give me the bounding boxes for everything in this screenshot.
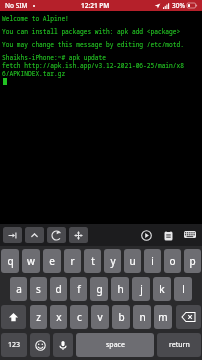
button[interactable]: i: [144, 249, 161, 273]
staticText: p: [189, 254, 196, 268]
button[interactable]: n: [133, 305, 151, 329]
button[interactable]: p: [184, 249, 201, 273]
staticText: space: [106, 340, 125, 350]
staticText: You may change this message by editing /…: [2, 40, 184, 48]
button[interactable]: Control: [25, 227, 44, 243]
staticText: 6/APKINDEX.tar.gz: [2, 69, 66, 77]
button[interactable]: Shift: [1, 305, 26, 329]
button[interactable]: x: [50, 305, 67, 329]
button[interactable]: r: [64, 249, 81, 273]
button[interactable]: 123: [1, 333, 27, 357]
button[interactable]: l: [174, 277, 192, 301]
staticText: 123: [8, 340, 21, 350]
staticText: s: [36, 282, 41, 296]
button[interactable]: Clipboard: [161, 228, 175, 242]
staticText: j: [140, 282, 143, 296]
staticText: No SIM: [5, 1, 28, 10]
button[interactable]: c: [70, 305, 88, 329]
staticText: c: [77, 310, 82, 324]
staticText: l: [182, 282, 185, 296]
staticText: Shaikhs-iPhone:~# apk update: [2, 53, 106, 61]
staticText: m: [158, 310, 168, 324]
button[interactable]: Backspace: [176, 305, 201, 329]
staticText: y: [110, 254, 116, 268]
staticText: q: [7, 254, 14, 268]
staticText: g: [96, 282, 103, 296]
button[interactable]: a: [10, 277, 27, 301]
button[interactable]: b: [112, 305, 130, 329]
button[interactable]: q: [1, 249, 19, 273]
button[interactable]: Tab: [3, 227, 22, 243]
staticText: return: [169, 340, 190, 350]
button[interactable]: e: [43, 249, 61, 273]
staticText: f: [77, 282, 81, 296]
staticText: i: [151, 254, 154, 268]
button[interactable]: Paste: [139, 228, 153, 242]
staticText: fetch http://apk.ish.app/v3.12-2021-06-2…: [2, 61, 184, 69]
button[interactable]: v: [91, 305, 109, 329]
button[interactable]: z: [30, 305, 47, 329]
staticText: d: [55, 282, 62, 296]
button[interactable]: Escape: [47, 227, 66, 243]
button[interactable]: w: [22, 249, 40, 273]
button[interactable]: u: [124, 249, 141, 273]
staticText: a: [16, 282, 22, 296]
staticText: v: [97, 310, 103, 324]
button[interactable]: Dictation: [53, 333, 73, 357]
staticText: n: [139, 310, 146, 324]
button[interactable]: o: [164, 249, 181, 273]
staticText: You can install packages with: apk add <…: [2, 27, 181, 35]
button[interactable]: y: [104, 249, 121, 273]
button[interactable]: Arrow keys: [69, 227, 88, 243]
button[interactable]: m: [154, 305, 172, 329]
button[interactable]: g: [90, 277, 108, 301]
button[interactable]: s: [30, 277, 47, 301]
button[interactable]: return: [157, 333, 201, 357]
staticText: k: [159, 282, 165, 296]
staticText: b: [118, 310, 125, 324]
staticText: u: [129, 254, 136, 268]
staticText: Welcome to Alpine!: [2, 14, 69, 22]
button[interactable]: d: [50, 277, 67, 301]
staticText: t: [91, 254, 95, 268]
staticText: o: [169, 254, 176, 268]
staticText: x: [56, 310, 62, 324]
staticText: h: [117, 282, 124, 296]
staticText: e: [49, 254, 55, 268]
button[interactable]: Emoji: [30, 333, 50, 357]
staticText: 30%: [172, 1, 185, 10]
button[interactable]: k: [153, 277, 171, 301]
button[interactable]: Hide keyboard: [183, 228, 197, 242]
button[interactable]: t: [84, 249, 101, 273]
staticText: w: [27, 254, 35, 268]
button[interactable]: j: [132, 277, 150, 301]
staticText: z: [36, 310, 41, 324]
staticText: r: [70, 254, 75, 268]
button[interactable]: h: [111, 277, 129, 301]
button[interactable]: f: [70, 277, 87, 301]
button[interactable]: space: [76, 333, 154, 357]
staticText: 12:21 PM: [81, 1, 110, 10]
